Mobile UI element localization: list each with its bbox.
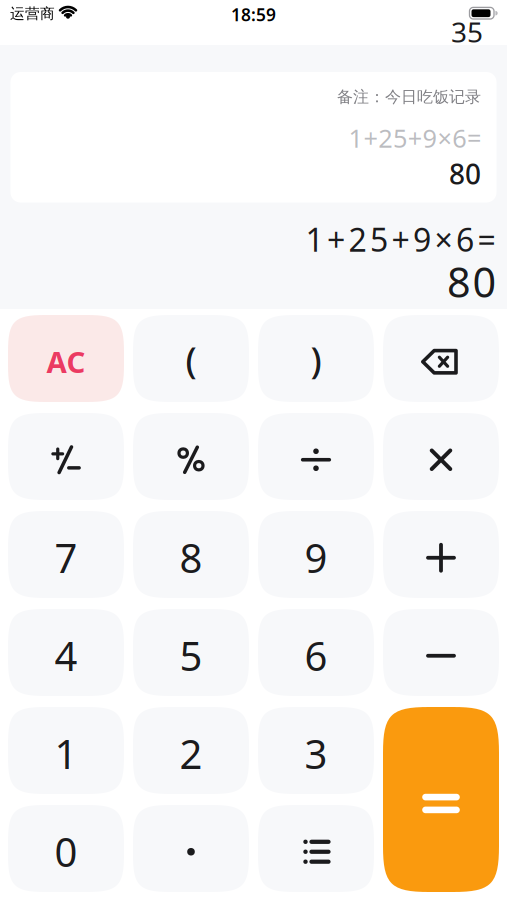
button[interactable]: History	[258, 805, 374, 892]
button[interactable]: Multiply	[383, 413, 499, 500]
button[interactable]: Plus minus	[8, 413, 124, 500]
button[interactable]: 0	[8, 805, 124, 892]
button[interactable]: 2	[133, 707, 249, 794]
staticText: 1	[54, 727, 77, 780]
button[interactable]: Delete	[383, 315, 499, 402]
staticText: 8	[179, 531, 202, 584]
staticText: AC	[46, 342, 85, 381]
button[interactable]: Subtract	[383, 609, 499, 696]
staticText: 5	[179, 629, 202, 682]
staticText: 9	[304, 531, 327, 584]
staticText: 1+25+9×6=	[349, 121, 481, 155]
staticText: 6	[304, 629, 327, 682]
staticText: 7	[54, 531, 77, 584]
staticText: 备注：今日吃饭记录	[337, 87, 481, 107]
staticText: 2	[179, 727, 202, 780]
button[interactable]: 3	[258, 707, 374, 794]
staticText: 80	[449, 155, 481, 192]
staticText: )	[310, 336, 321, 383]
button[interactable]: )	[258, 315, 374, 402]
button[interactable]: 6	[258, 609, 374, 696]
button[interactable]: AC	[8, 315, 124, 402]
staticText: 1+25+9×6=	[305, 218, 495, 260]
staticText: 3	[304, 727, 327, 780]
staticText: 4	[54, 629, 77, 682]
button[interactable]: 7	[8, 511, 124, 598]
button[interactable]: 9	[258, 511, 374, 598]
staticText: 18:59	[231, 3, 276, 26]
staticText: (	[185, 336, 196, 383]
button[interactable]: Equals	[383, 707, 499, 892]
button[interactable]: 5	[133, 609, 249, 696]
staticText: 80	[447, 254, 496, 309]
button[interactable]: Divide	[258, 413, 374, 500]
button[interactable]: Percent	[133, 413, 249, 500]
staticText: 运营商	[10, 4, 55, 22]
button[interactable]: Add	[383, 511, 499, 598]
staticText: 0	[54, 825, 77, 878]
button[interactable]: 1	[8, 707, 124, 794]
staticText: 35	[451, 13, 483, 50]
button[interactable]: 4	[8, 609, 124, 696]
button[interactable]: (	[133, 315, 249, 402]
button[interactable]: Decimal point	[133, 805, 249, 892]
button[interactable]: 8	[133, 511, 249, 598]
